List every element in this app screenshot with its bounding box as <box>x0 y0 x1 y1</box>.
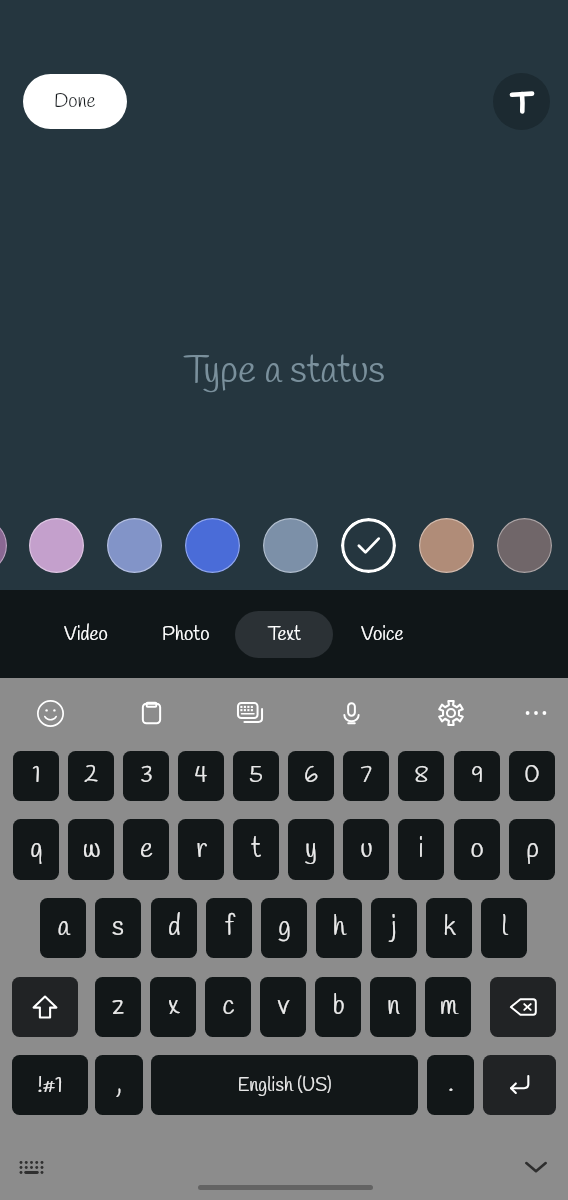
staticText: d <box>168 910 181 946</box>
staticText: g <box>278 910 291 946</box>
button[interactable]: 3 <box>123 751 169 801</box>
button[interactable]: 5 <box>233 751 279 801</box>
button[interactable]: o <box>454 819 500 880</box>
button[interactable]: d <box>151 898 197 958</box>
button[interactable]: Done <box>23 74 127 129</box>
button[interactable]: i <box>398 819 444 880</box>
staticText: o <box>470 832 484 868</box>
staticText: n <box>387 989 400 1025</box>
button[interactable]: English (US) <box>151 1055 418 1115</box>
button[interactable]: Voice input <box>334 696 368 730</box>
staticText: h <box>332 910 346 946</box>
button[interactable]: j <box>371 898 417 958</box>
button[interactable]: Colour swatch <box>107 518 162 573</box>
button[interactable]: , <box>95 1055 143 1115</box>
staticText: 2 <box>84 760 98 792</box>
button[interactable]: Selected colour <box>341 518 396 573</box>
staticText: w <box>82 832 101 868</box>
button[interactable]: Voice <box>344 611 420 658</box>
button[interactable]: a <box>40 898 86 958</box>
button[interactable]: x <box>150 977 196 1037</box>
button[interactable]: e <box>123 819 169 880</box>
button[interactable]: Colour swatch <box>185 518 240 573</box>
button[interactable]: 6 <box>288 751 334 801</box>
staticText: Video <box>64 622 108 647</box>
button[interactable]: u <box>343 819 389 880</box>
staticText: 8 <box>414 760 429 792</box>
button[interactable]: h <box>316 898 362 958</box>
button[interactable]: r <box>178 819 224 880</box>
staticText: a <box>57 910 70 946</box>
staticText: z <box>112 989 124 1025</box>
button[interactable]: t <box>233 819 279 880</box>
button[interactable]: 7 <box>343 751 389 801</box>
button[interactable]: 9 <box>454 751 500 801</box>
button[interactable]: w <box>68 819 114 880</box>
staticText: r <box>196 832 207 868</box>
staticText: 5 <box>249 760 263 792</box>
button[interactable]: n <box>370 977 416 1037</box>
button[interactable]: Colour swatch <box>0 518 7 573</box>
button[interactable]: Switch input method <box>13 1149 49 1185</box>
button[interactable]: Keyboard modes <box>233 696 267 730</box>
staticText: Photo <box>162 622 210 647</box>
button[interactable]: s <box>95 898 141 958</box>
staticText: 4 <box>194 760 208 792</box>
button[interactable]: Photo <box>148 611 224 658</box>
staticText: e <box>140 832 153 868</box>
button[interactable]: More options <box>519 696 553 730</box>
button[interactable]: m <box>425 977 471 1037</box>
button[interactable]: 2 <box>68 751 114 801</box>
button[interactable]: Colour swatch <box>263 518 318 573</box>
staticText: , <box>117 1069 122 1101</box>
button[interactable]: Video <box>48 611 124 658</box>
button[interactable]: f <box>206 898 252 958</box>
staticText: u <box>360 832 373 868</box>
button[interactable]: p <box>509 819 555 880</box>
button[interactable]: y <box>288 819 334 880</box>
button[interactable]: Enter <box>483 1055 556 1115</box>
button[interactable]: v <box>260 977 306 1037</box>
button[interactable]: !#1 <box>12 1055 88 1115</box>
button[interactable]: b <box>315 977 361 1037</box>
staticText: m <box>439 989 458 1025</box>
button[interactable]: 8 <box>398 751 444 801</box>
staticText: Text <box>268 622 301 647</box>
button[interactable]: Clipboard <box>134 696 168 730</box>
button[interactable]: . <box>427 1055 474 1115</box>
button[interactable]: Hide keyboard <box>518 1149 554 1185</box>
staticText: c <box>222 989 235 1025</box>
staticText: b <box>332 989 345 1025</box>
button[interactable]: 1 <box>13 751 59 801</box>
button[interactable]: Shift <box>12 977 78 1037</box>
button[interactable]: 0 <box>509 751 555 801</box>
staticText: v <box>277 989 290 1025</box>
staticText: . <box>448 1069 454 1101</box>
staticText: p <box>526 832 539 868</box>
staticText: Type a status <box>184 347 385 398</box>
button[interactable]: g <box>261 898 307 958</box>
button[interactable]: Colour swatch <box>497 518 552 573</box>
staticText: Done <box>54 89 96 114</box>
button[interactable]: 4 <box>178 751 224 801</box>
button[interactable]: z <box>95 977 141 1037</box>
button[interactable]: q <box>13 819 59 880</box>
button[interactable]: Colour swatch <box>419 518 474 573</box>
button[interactable]: Settings <box>434 696 468 730</box>
staticText: y <box>305 832 317 868</box>
button[interactable]: Colour swatch <box>29 518 84 573</box>
staticText: s <box>112 910 124 946</box>
button[interactable]: Backspace <box>490 977 556 1037</box>
staticText: 1 <box>32 760 41 792</box>
staticText: 0 <box>524 760 540 792</box>
staticText: t <box>251 832 261 868</box>
button[interactable]: Emoji <box>33 696 67 730</box>
staticText: q <box>30 832 43 868</box>
staticText: j <box>391 910 397 946</box>
button[interactable]: Change font <box>493 73 550 130</box>
button[interactable]: k <box>426 898 472 958</box>
staticText: English (US) <box>237 1073 332 1098</box>
button[interactable]: Text <box>235 611 333 658</box>
button[interactable]: c <box>205 977 251 1037</box>
button[interactable]: l <box>481 898 527 958</box>
